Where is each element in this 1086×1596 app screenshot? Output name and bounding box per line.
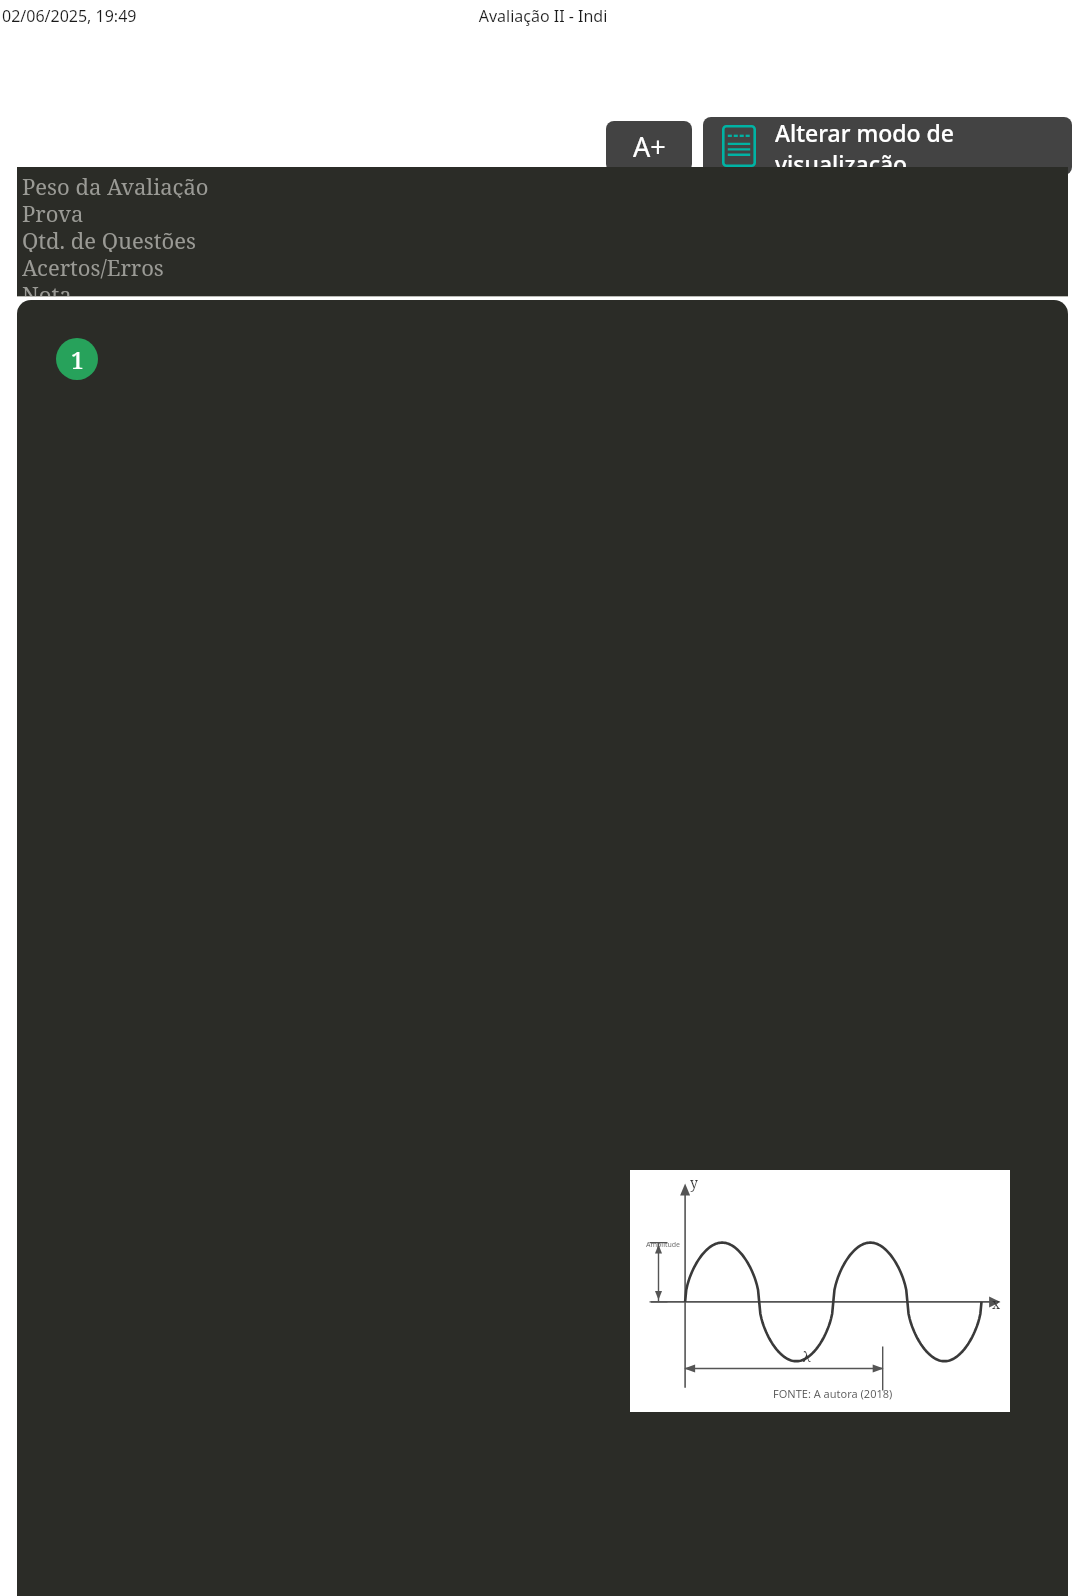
staticText: Avaliação II - Indi — [0, 5, 1086, 27]
staticText: Prova — [22, 198, 84, 225]
staticText: Qtd. de Questões — [22, 225, 196, 252]
staticText: FONTE: A autora (2018) — [773, 1386, 893, 1401]
button[interactable]: Alterar modo de visualização — [703, 117, 1072, 175]
staticText: Nota — [22, 279, 72, 297]
staticText: Amplitude — [646, 1240, 681, 1250]
staticText: x — [992, 1294, 1001, 1313]
button[interactable]: 1 — [56, 338, 98, 380]
button[interactable]: Aumentar fonte — [606, 121, 692, 172]
staticText: λ — [802, 1346, 811, 1366]
staticText: Acertos/Erros — [22, 252, 164, 279]
staticText: 02/06/2025, 19:49 — [2, 5, 137, 27]
staticText: A+ — [633, 128, 666, 165]
staticText: Peso da Avaliação — [22, 171, 209, 198]
staticText: 1 — [71, 344, 84, 375]
staticText: y — [690, 1173, 698, 1192]
staticText: Alterar modo de visualização — [775, 117, 1072, 175]
